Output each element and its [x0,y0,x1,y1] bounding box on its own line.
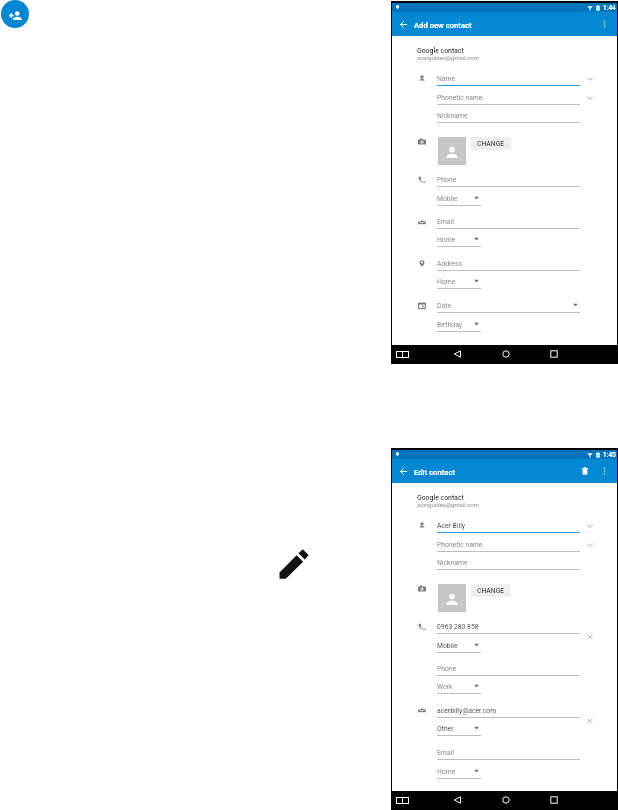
button[interactable]: Remove [584,631,595,642]
staticText: Home [437,278,456,286]
button[interactable]: Overview [544,345,564,363]
button[interactable]: Birthday [437,319,481,332]
button[interactable]: Phonetic name [437,92,580,105]
button[interactable]: Work [437,681,481,694]
button[interactable]: More options [596,12,612,36]
staticText: Phone [437,176,457,184]
staticText: Add new contact [414,21,472,30]
button[interactable]: Back [447,345,467,363]
staticText: Google contact [417,494,464,502]
button[interactable]: Home [437,766,481,779]
button[interactable]: Add contact [1,0,29,28]
button[interactable]: Edit [278,549,309,580]
button[interactable]: Recents [392,345,412,363]
button[interactable]: Nickname [437,110,580,123]
staticText: Address [437,260,462,268]
staticText: CHANGE [477,140,505,148]
button[interactable]: Nickname [437,557,580,570]
staticText: Mobile [437,642,458,650]
button[interactable]: Back [395,459,412,483]
staticText: acerguides@gmail.com [417,55,479,62]
button[interactable]: Delete [577,459,593,483]
staticText: 1:45 [603,451,616,459]
button[interactable]: Phonetic name [437,539,580,552]
button[interactable]: Date [437,300,580,313]
button[interactable]: CHANGE [471,137,511,150]
staticText: Edit contact [414,468,455,477]
button[interactable]: Home [437,276,481,289]
staticText: acerbilly@acer.com [437,707,497,715]
button[interactable]: Mobile [437,193,481,206]
button[interactable]: Phone [437,663,580,676]
staticText: 0963 280 858 [437,623,479,631]
button[interactable]: Mobile [437,640,481,653]
staticText: Nickname [437,559,468,567]
staticText: Work [437,683,453,691]
button[interactable]: Other [437,723,481,736]
staticText: Date [437,302,451,310]
staticText: Home [437,236,456,244]
staticText: Birthday [437,321,463,329]
button[interactable]: acerbilly@acer.com [437,705,580,718]
staticText: Acer Billy [437,522,465,530]
staticText: Phonetic name [437,541,483,549]
button[interactable]: Overview [544,791,564,809]
staticText: Name [437,75,456,83]
button[interactable]: Back [395,12,412,36]
staticText: Email [437,218,454,226]
button[interactable]: Back [447,791,467,809]
staticText: Mobile [437,195,458,203]
button[interactable]: 0963 280 858 [437,621,580,634]
button[interactable]: Home [496,791,516,809]
button[interactable]: Home [437,234,481,247]
button[interactable]: Email [437,216,580,229]
button[interactable]: Acer Billy [437,520,580,533]
staticText: Home [437,768,456,776]
staticText: Nickname [437,112,468,120]
button[interactable]: Phone [437,174,580,187]
button[interactable]: CHANGE [471,584,511,597]
staticText: Phone [437,665,457,673]
button[interactable]: Remove [584,715,595,726]
button[interactable]: Recents [392,791,412,809]
button[interactable]: Address [437,258,580,271]
staticText: Google contact [417,47,464,55]
button[interactable]: Home [496,345,516,363]
staticText: acerguides@gmail.com [417,502,479,509]
staticText: 1:44 [603,4,616,12]
button[interactable]: Email [437,747,580,760]
staticText: Phonetic name [437,94,483,102]
staticText: Email [437,749,454,757]
staticText: Other [437,725,454,733]
button[interactable]: More options [596,459,612,483]
button[interactable]: Name [437,73,580,86]
staticText: CHANGE [477,587,505,595]
